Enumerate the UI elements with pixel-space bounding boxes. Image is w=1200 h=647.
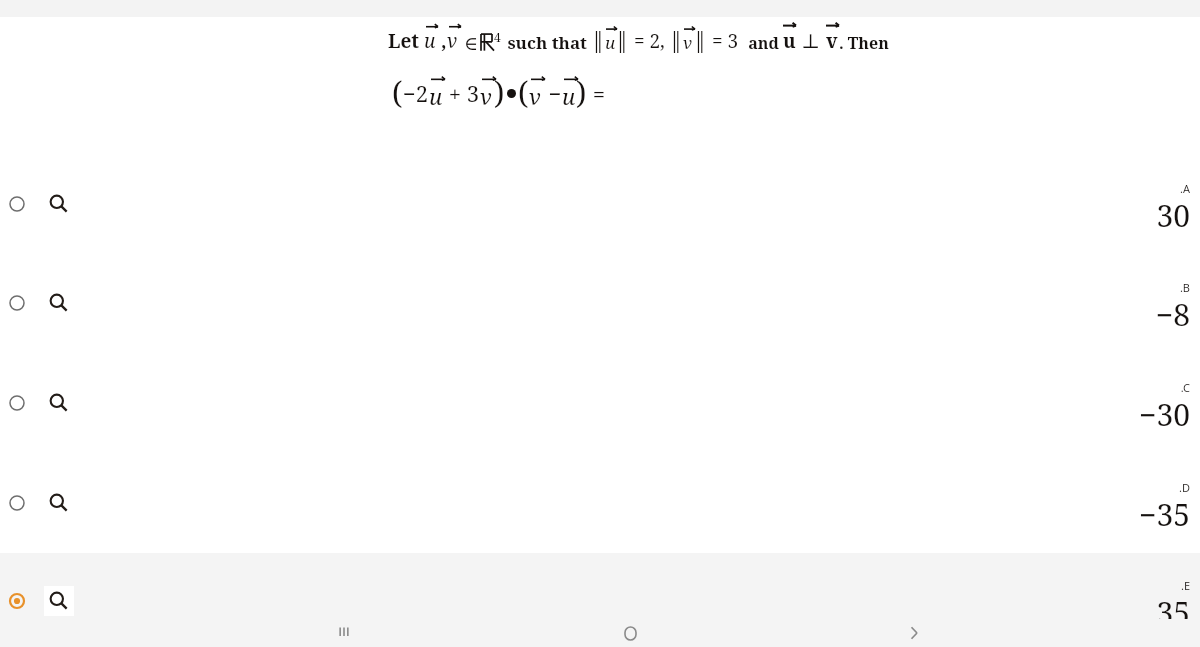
staticText: )	[494, 72, 505, 113]
staticText: v	[529, 81, 541, 111]
staticText: u	[429, 81, 443, 111]
staticText: such that	[503, 31, 592, 54]
staticText: Let	[388, 28, 424, 54]
staticText: ⊥	[796, 27, 826, 54]
staticText: −8	[1050, 294, 1190, 335]
button[interactable]: Select option D	[0, 455, 1200, 549]
staticText: v	[447, 28, 458, 54]
staticText: .C	[1120, 380, 1190, 395]
staticText: + 3	[443, 78, 480, 108]
staticText: v	[826, 28, 838, 54]
button[interactable]: Select option C	[6, 392, 28, 414]
staticText: 35	[1050, 592, 1190, 633]
staticText: .B	[1120, 280, 1190, 295]
staticText: −	[543, 78, 562, 108]
staticText: .E	[1120, 578, 1190, 593]
staticText: ‖	[694, 24, 707, 54]
button[interactable]: Select option B	[0, 255, 1200, 349]
staticText: ‖	[592, 24, 605, 54]
button[interactable]: Zoom option E	[44, 586, 74, 616]
button[interactable]: Zoom option A	[44, 189, 74, 219]
staticText: = 2,	[629, 28, 670, 54]
staticText: −30	[1050, 394, 1190, 435]
button[interactable]: Home	[598, 619, 662, 647]
button[interactable]: Select option B	[6, 292, 28, 314]
button[interactable]: Recent apps	[312, 619, 376, 647]
button[interactable]: Back	[882, 619, 946, 647]
button[interactable]: Select option A	[6, 193, 28, 215]
button[interactable]: Select option C	[0, 355, 1200, 449]
button[interactable]: Select option D	[6, 492, 28, 514]
staticText: ∈	[464, 32, 479, 54]
button[interactable]: Zoom option B	[44, 288, 74, 318]
staticText: ‖	[616, 24, 629, 54]
staticText: (	[518, 72, 529, 113]
staticText: )	[576, 72, 587, 113]
staticText: (	[392, 72, 403, 113]
staticText: −35	[1050, 494, 1190, 535]
staticText: −2	[403, 78, 429, 108]
button[interactable]: Select option E	[6, 590, 28, 612]
staticText: u	[562, 81, 576, 111]
button[interactable]: Zoom option D	[44, 488, 74, 518]
staticText: . Then	[839, 32, 889, 54]
staticText: ,	[436, 28, 447, 54]
staticText: =	[587, 78, 606, 108]
staticText: v	[480, 81, 492, 111]
staticText: .D	[1120, 480, 1190, 495]
button[interactable]: Select option E	[0, 553, 1200, 647]
button[interactable]: Select option A	[0, 156, 1200, 250]
staticText: u	[605, 31, 616, 54]
staticText: .A	[1120, 181, 1190, 196]
staticText: 4	[494, 29, 501, 45]
staticText: v	[683, 31, 693, 54]
staticText: and	[744, 32, 783, 54]
staticText: ‖	[670, 24, 683, 54]
staticText: = 3	[707, 28, 744, 54]
button[interactable]: Zoom option C	[44, 388, 74, 418]
staticText: u	[783, 28, 796, 54]
staticText: 30	[1050, 195, 1190, 236]
staticText: u	[424, 28, 436, 54]
